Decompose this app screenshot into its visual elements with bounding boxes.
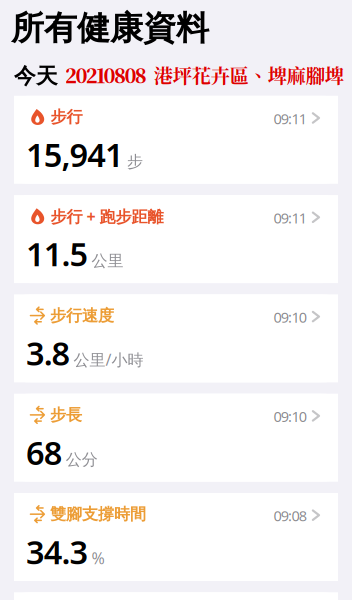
staticText: 20210808 <box>65 61 147 88</box>
staticText: 09:11 <box>273 109 307 128</box>
staticText: 步行 <box>50 107 82 127</box>
staticText: 68 <box>26 431 63 474</box>
staticText: 公里 <box>91 251 123 271</box>
staticText: 11.5 <box>26 232 88 275</box>
staticText: 09:11 <box>273 208 307 227</box>
staticText: 所有健康資料 <box>11 8 209 48</box>
button[interactable]: 步行 + 跑步距離 <box>14 195 338 283</box>
staticText: 雙腳支撐時間 <box>50 504 146 524</box>
staticText: 步行速度 <box>50 306 114 325</box>
staticText: 今天 <box>14 63 58 89</box>
staticText: 步 <box>127 152 143 171</box>
staticText: 公里/小時 <box>74 349 144 370</box>
button[interactable]: 步行 <box>14 96 338 184</box>
staticText: 步行 + 跑步距離 <box>50 206 163 227</box>
staticText: 09:08 <box>273 506 307 525</box>
staticText: 09:10 <box>273 407 307 426</box>
staticText: 09:10 <box>273 307 307 327</box>
button[interactable]: 步行速度 <box>14 294 338 382</box>
staticText: 34.3 <box>26 530 88 573</box>
staticText: 港坪花卉區、埤麻腳埤 <box>154 61 344 88</box>
staticText: 3.8 <box>26 331 71 375</box>
staticText: 15,941 <box>26 133 124 176</box>
button[interactable]: 雙腳支撐時間 <box>14 493 338 581</box>
staticText: 公分 <box>66 450 98 469</box>
staticText: % <box>91 547 104 568</box>
staticText: 步長 <box>50 405 82 425</box>
button[interactable]: 步長 <box>14 394 338 482</box>
